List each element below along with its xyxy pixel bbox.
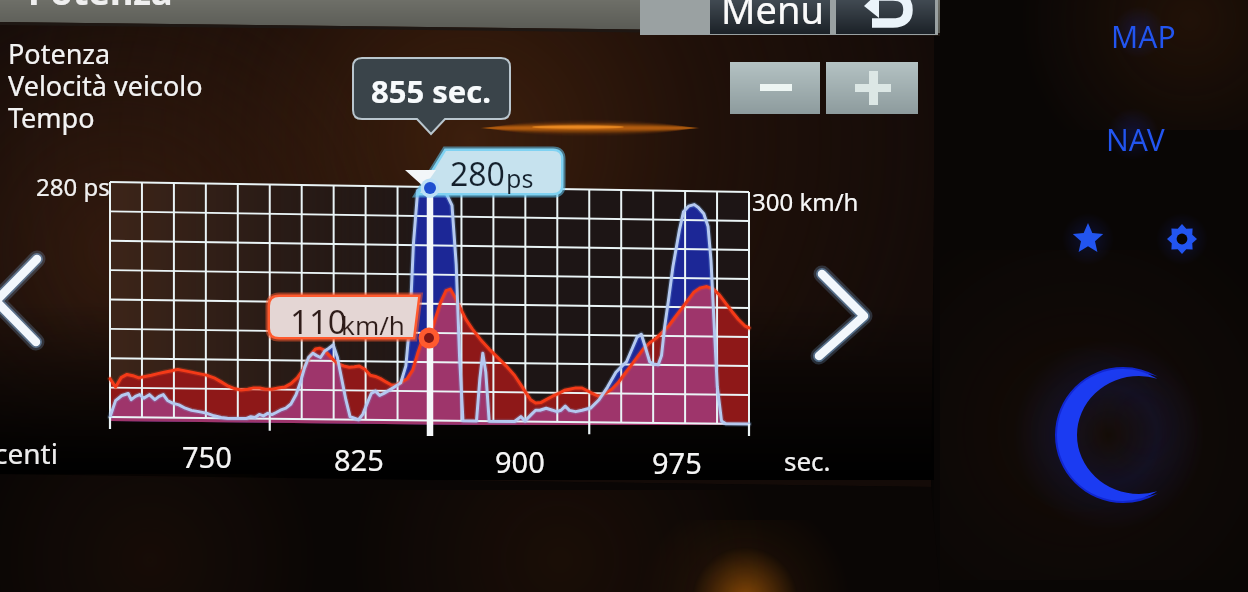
button[interactable]: Back [836,0,935,34]
button[interactable]: Menu [710,0,830,34]
button[interactable]: Favourite [1062,213,1114,265]
button[interactable]: Zoom in [826,62,918,114]
button[interactable]: Zoom out [730,62,820,114]
button[interactable]: Chart [106,176,754,428]
button[interactable]: Next [806,266,882,366]
button[interactable]: Volume knob [1050,362,1198,510]
button[interactable]: NAV [1090,110,1180,158]
button[interactable]: Settings [1156,213,1208,265]
button[interactable]: MAP [1095,8,1185,56]
button[interactable]: Previous [0,252,56,352]
